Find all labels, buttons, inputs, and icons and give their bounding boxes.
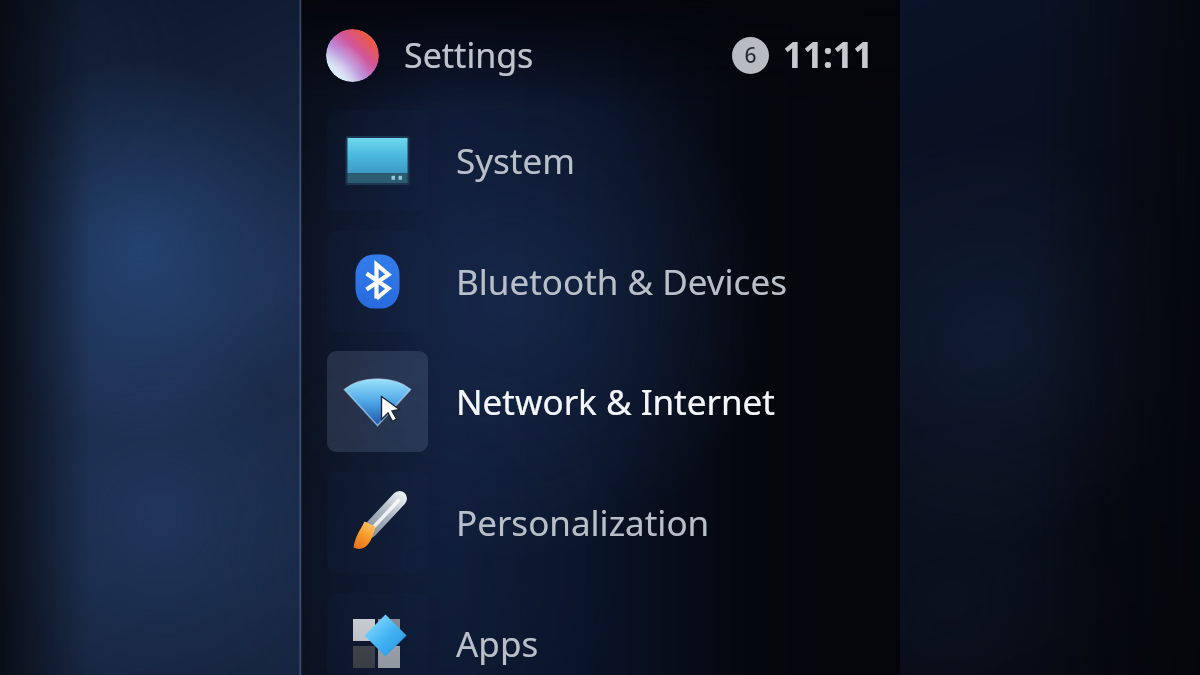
button[interactable]: Apps	[301, 593, 900, 675]
button[interactable]: Account	[326, 29, 379, 82]
button[interactable]: Personalization	[301, 472, 900, 573]
staticText: Apps	[456, 620, 539, 668]
button[interactable]: System	[301, 110, 900, 211]
button[interactable]: Bluetooth & Devices	[301, 231, 900, 332]
button[interactable]: 6	[732, 37, 769, 74]
staticText: 11:11	[783, 31, 873, 79]
staticText: Settings	[404, 32, 534, 78]
button[interactable]: Network & Internet	[301, 351, 900, 452]
staticText: 6	[744, 41, 757, 70]
staticText: Personalization	[456, 499, 710, 547]
staticText: System	[456, 137, 575, 185]
staticText: Network & Internet	[456, 378, 775, 426]
staticText: Bluetooth & Devices	[456, 258, 787, 306]
